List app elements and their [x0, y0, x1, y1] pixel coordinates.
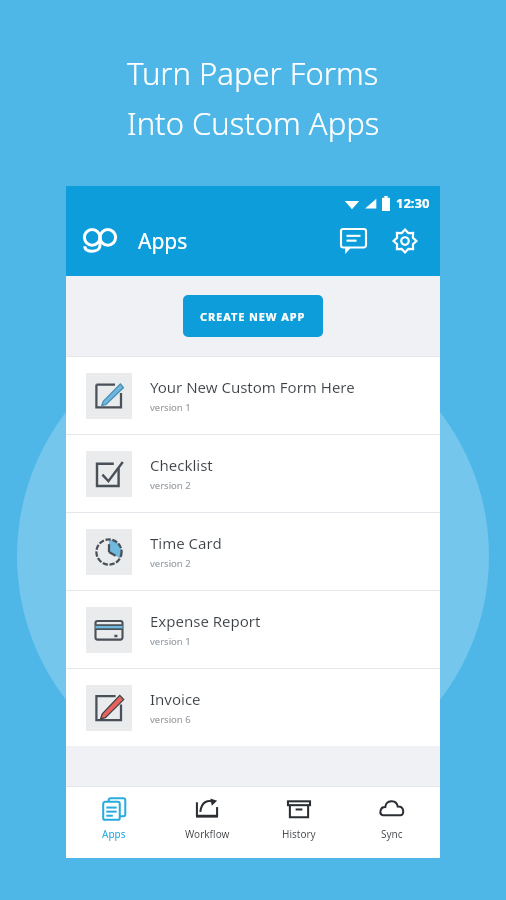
staticText: Invoice: [150, 689, 201, 709]
button[interactable]: Expense Report: [66, 591, 440, 668]
button[interactable]: Your New Custom Form Here: [66, 357, 440, 434]
button[interactable]: Invoice: [66, 669, 440, 746]
staticText: Apps: [138, 227, 188, 256]
button[interactable]: Messages: [332, 220, 374, 262]
button[interactable]: Checklist: [66, 435, 440, 512]
staticText: version 1: [150, 401, 191, 414]
button[interactable]: Apps: [69, 787, 159, 851]
staticText: Apps: [102, 827, 126, 841]
staticText: version 2: [150, 557, 191, 570]
staticText: Sync: [381, 827, 403, 841]
button[interactable]: Settings: [384, 220, 426, 262]
staticText: Turn Paper Forms: [127, 52, 379, 94]
button[interactable]: GoCanvas home: [80, 221, 120, 261]
staticText: Into Custom Apps: [127, 102, 380, 144]
button[interactable]: History: [254, 787, 344, 851]
button[interactable]: Time Card: [66, 513, 440, 590]
button[interactable]: CREATE NEW APP: [183, 295, 323, 337]
staticText: History: [282, 827, 316, 841]
staticText: Workflow: [185, 827, 230, 841]
staticText: 12:30: [396, 194, 430, 212]
button[interactable]: Sync: [347, 787, 437, 851]
staticText: Your New Custom Form Here: [150, 377, 355, 397]
button[interactable]: Workflow: [162, 787, 252, 851]
staticText: version 2: [150, 479, 191, 492]
staticText: CREATE NEW APP: [200, 309, 306, 324]
staticText: Expense Report: [150, 611, 261, 631]
staticText: Time Card: [150, 533, 222, 553]
staticText: version 1: [150, 635, 191, 648]
staticText: Checklist: [150, 455, 213, 475]
staticText: version 6: [150, 713, 191, 726]
